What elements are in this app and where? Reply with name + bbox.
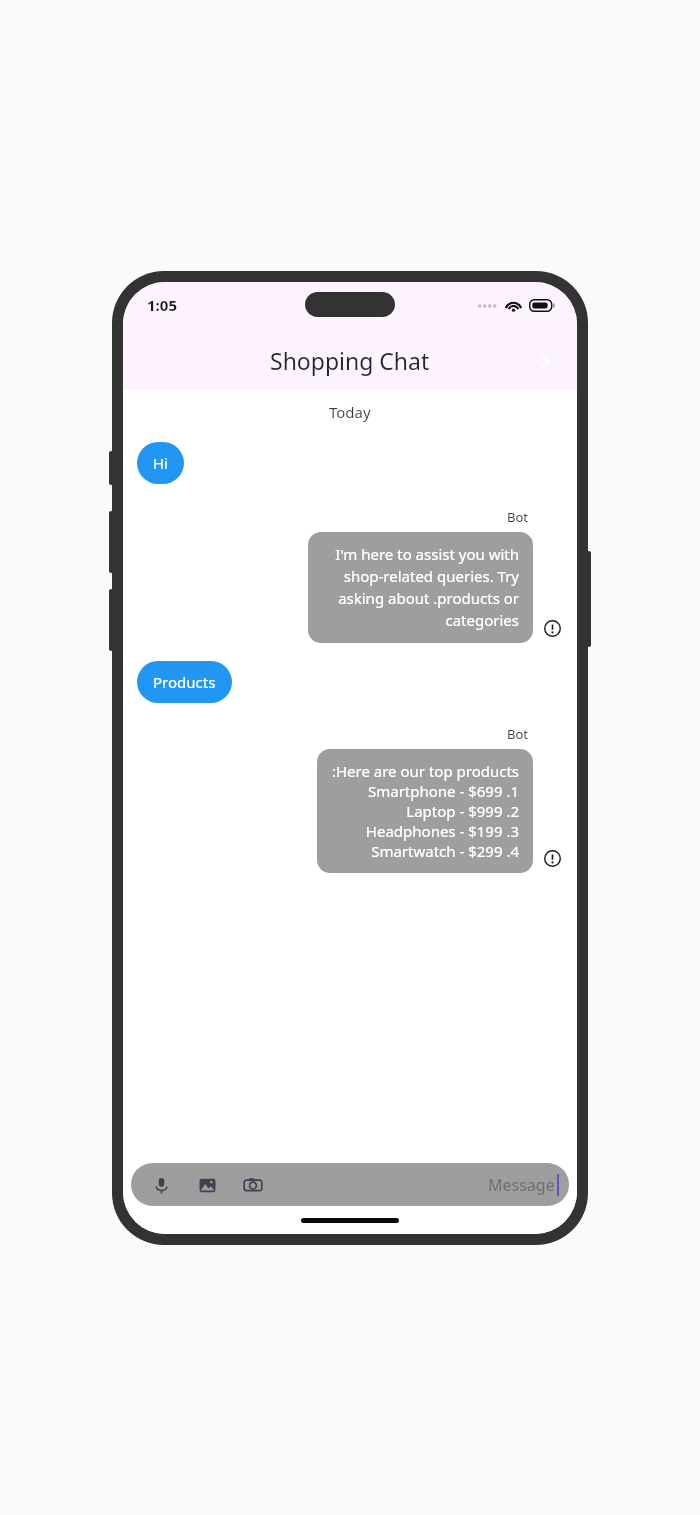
staticText: Bot [507,725,529,743]
button[interactable]: Message error [541,617,563,639]
staticText: Hi [153,453,168,473]
staticText: Headphones - $199 .3 [365,821,519,841]
button[interactable]: Hi [137,442,184,484]
button[interactable]: Voice input [145,1169,177,1201]
button[interactable]: Voice input [131,1163,569,1206]
staticText: Products [153,672,216,692]
staticText: Smartwatch - $299 .4 [371,841,519,861]
button[interactable]: I'm here to assist you with shop-related… [308,532,533,643]
button[interactable]: Message error [541,847,563,869]
staticText: Laptop - $999 .2 [406,801,519,821]
staticText: Bot [507,508,529,526]
staticText: Message [488,1174,555,1196]
button[interactable]: Products [137,661,232,703]
staticText: 1:05 [147,295,177,315]
button[interactable]: Gallery [191,1169,223,1201]
staticText: Today [329,402,371,422]
button[interactable]: Camera [237,1169,269,1201]
staticText: Smartphone - $699 .1 [367,781,519,801]
staticText: :Here are our top products [331,761,519,781]
staticText: Shopping Chat [270,345,430,376]
button[interactable]: :Here are our top products [317,749,533,873]
staticText: I'm here to assist you with shop-related… [322,544,519,631]
